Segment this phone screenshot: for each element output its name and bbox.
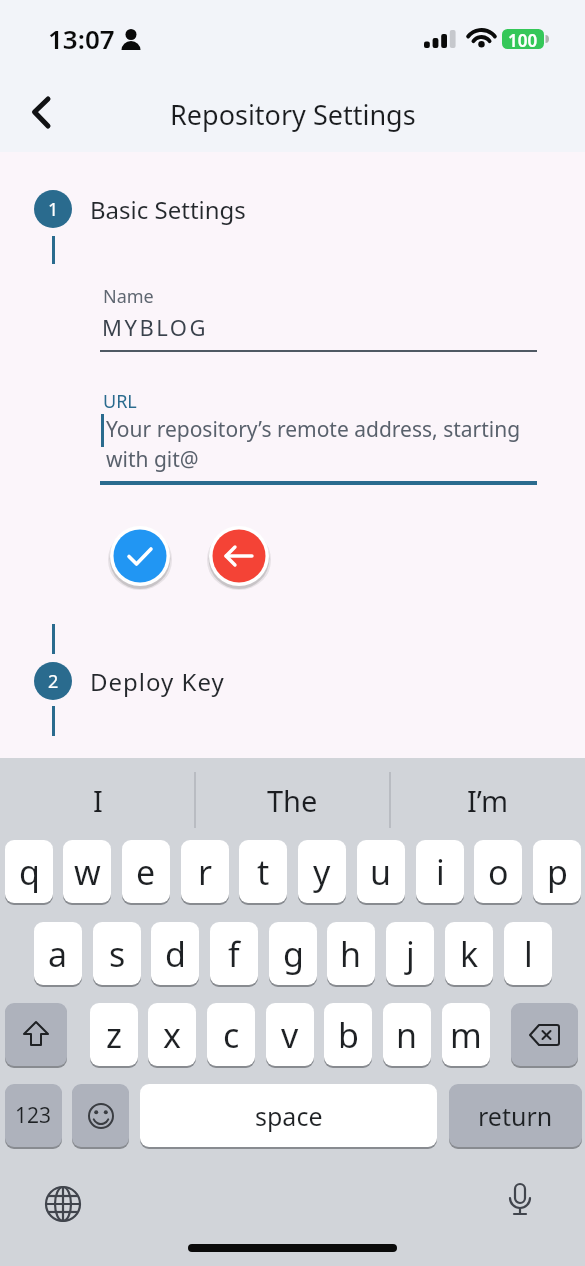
button[interactable]: h [327,922,375,985]
staticText: i [436,849,445,895]
staticText: z [106,1012,122,1058]
button[interactable]: b [324,1003,372,1066]
button[interactable]: m [442,1003,490,1066]
button[interactable]: q [5,840,53,903]
staticText: Name [103,284,154,309]
staticText: Your repository’s remote address, starti… [106,415,521,473]
button[interactable]: d [151,922,199,985]
staticText: d [165,931,186,977]
button[interactable]: t [239,840,287,903]
button[interactable]: o [474,840,522,903]
staticText: I [93,781,103,820]
staticText: I’m [467,781,509,820]
staticText: u [370,849,392,895]
staticText: e [136,849,156,895]
button[interactable] [41,1182,85,1226]
button[interactable]: y [298,840,346,903]
staticText: s [109,931,126,977]
button[interactable] [72,1084,129,1147]
staticText: b [338,1012,359,1058]
staticText: return [478,1099,553,1133]
staticText: q [19,849,40,895]
button[interactable]: 123 [5,1084,62,1147]
staticText: w [74,849,101,895]
button[interactable]: I’m [390,772,585,828]
button[interactable]: c [207,1003,255,1066]
staticText: c [223,1012,240,1058]
staticText: o [488,849,509,895]
button[interactable] [205,522,273,590]
staticText: y [313,849,331,895]
staticText: Basic Settings [90,193,246,226]
staticText: x [163,1012,181,1058]
button[interactable] [498,1180,542,1224]
staticText: h [340,931,362,977]
button[interactable]: 1 [34,190,72,228]
staticText: m [450,1012,482,1058]
button[interactable] [511,1003,578,1066]
button[interactable]: space [140,1084,437,1147]
button[interactable]: k [445,922,493,985]
staticText: 2 [48,669,59,694]
button[interactable]: w [63,840,111,903]
staticText: 1 [48,197,59,222]
staticText: t [257,849,270,895]
staticText: j [406,931,415,977]
button[interactable]: p [533,840,581,903]
staticText: 100 [508,29,538,49]
staticText: MYBLOG [102,312,208,342]
staticText: l [524,931,533,977]
button[interactable]: l [504,922,552,985]
button[interactable]: f [210,922,258,985]
button[interactable]: z [90,1003,138,1066]
button[interactable]: a [34,922,82,985]
button[interactable]: e [122,840,170,903]
staticText: Deploy Key [90,665,225,698]
button[interactable]: i [416,840,464,903]
button[interactable]: u [357,840,405,903]
button[interactable]: I [0,772,195,828]
button[interactable]: j [386,922,434,985]
button[interactable]: return [449,1084,582,1147]
staticText: p [547,849,568,895]
button[interactable]: g [269,922,317,985]
button[interactable]: n [383,1003,431,1066]
staticText: v [281,1012,299,1058]
staticText: g [283,931,304,977]
staticText: 13:07 [48,21,115,56]
button[interactable] [16,88,66,138]
button[interactable]: s [93,922,141,985]
staticText: n [396,1012,418,1058]
staticText: 123 [15,1101,52,1130]
staticText: space [255,1099,323,1133]
staticText: a [48,931,68,977]
button[interactable]: r [181,840,229,903]
button[interactable] [106,522,174,590]
button[interactable]: x [148,1003,196,1066]
staticText: f [228,931,240,977]
button[interactable]: 13:07 [48,21,115,56]
staticText: The [267,781,318,820]
button[interactable]: 2 [34,662,72,700]
button[interactable] [5,1003,67,1066]
staticText: URL [103,389,137,414]
button[interactable]: The [195,772,390,828]
staticText: Repository Settings [170,96,416,132]
staticText: r [198,849,213,895]
button[interactable]: v [266,1003,314,1066]
staticText: k [460,931,479,977]
